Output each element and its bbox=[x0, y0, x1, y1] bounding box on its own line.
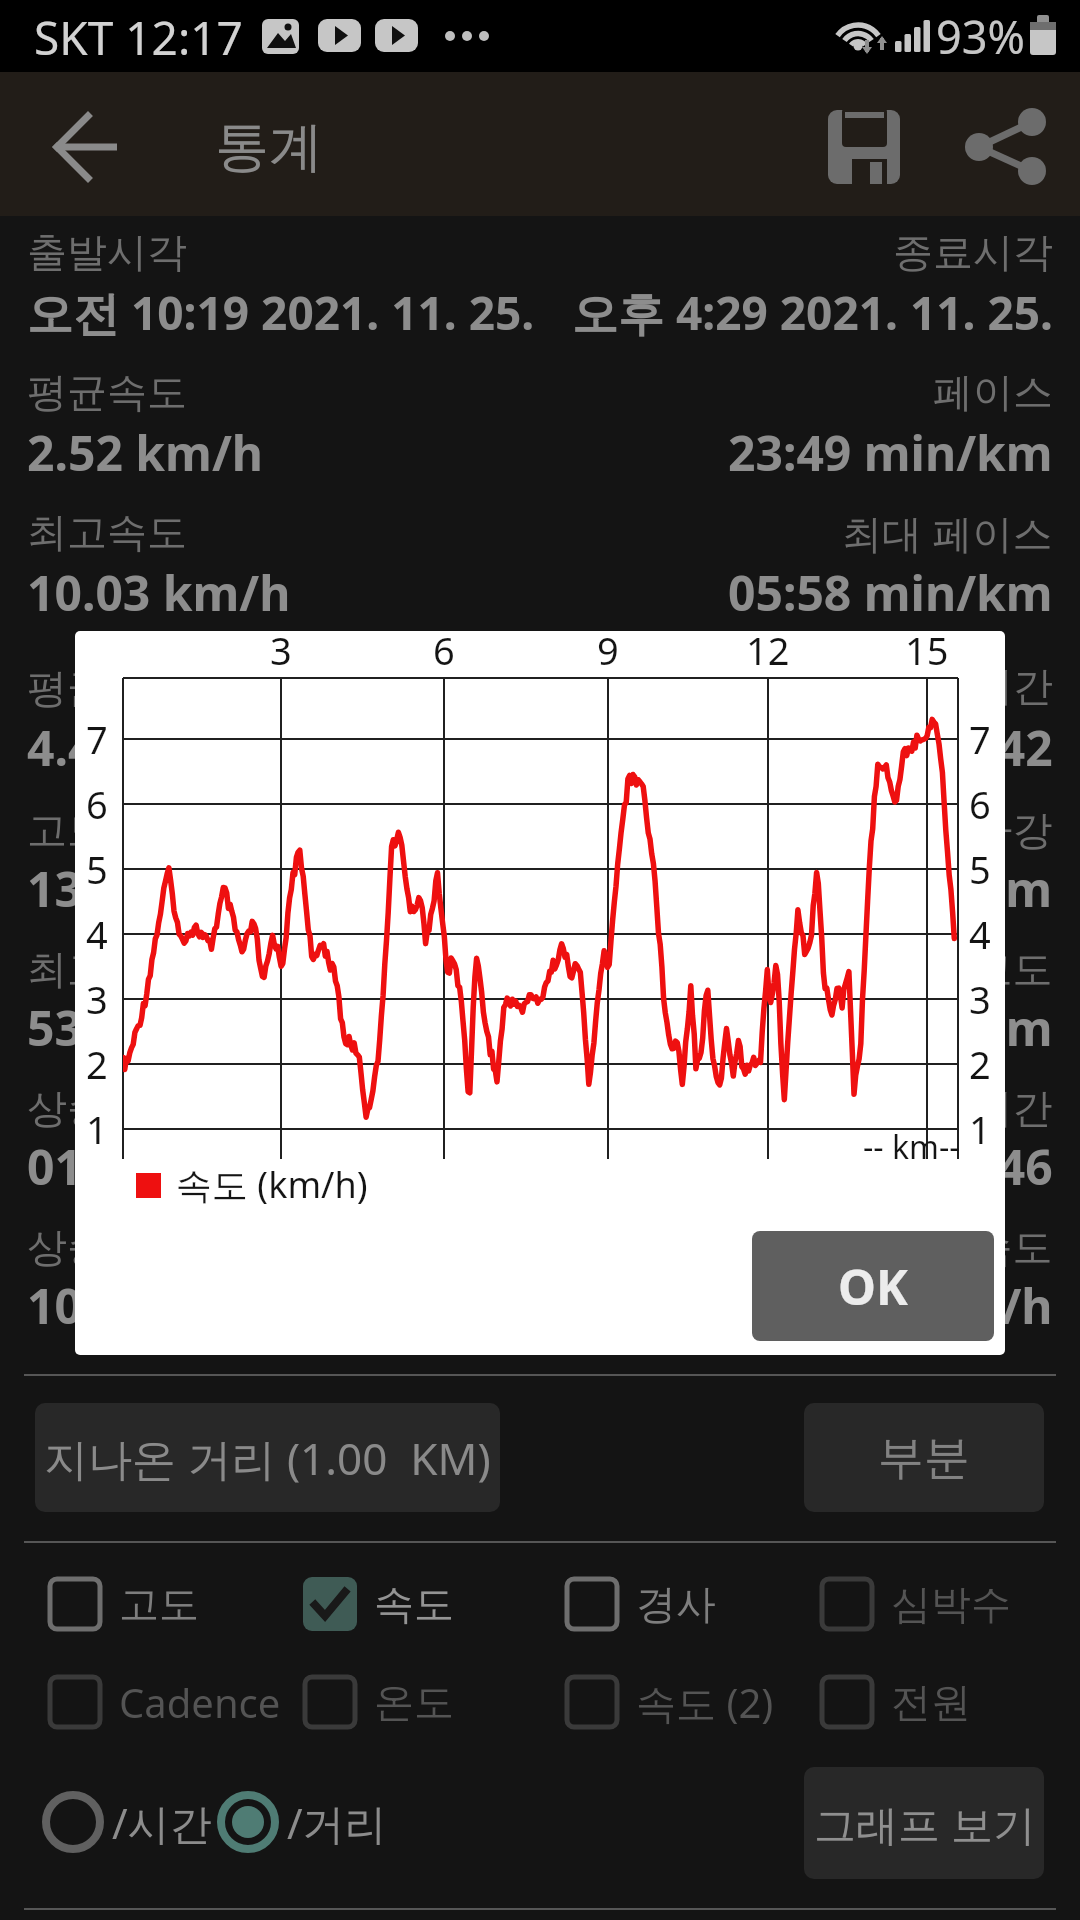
staticText: /시간 bbox=[112, 1794, 212, 1851]
staticText: 2 bbox=[969, 1038, 991, 1090]
staticText: SKT 12:17 bbox=[34, 6, 243, 69]
staticText: 7 bbox=[969, 713, 991, 765]
staticText: 온도 bbox=[374, 1677, 454, 1727]
staticText: 오전 10:19 2021. 11. 25. bbox=[27, 281, 535, 344]
staticText: 상승 속도 bbox=[27, 1218, 198, 1273]
staticText: 3 bbox=[270, 631, 292, 676]
staticText: 통계 bbox=[215, 113, 323, 181]
button[interactable] bbox=[35, 107, 135, 187]
staticText: 고도 하강 bbox=[882, 801, 1053, 856]
button[interactable]: 속도 (2) bbox=[565, 1675, 774, 1729]
staticText: 1.2 km/h bbox=[844, 1273, 1053, 1338]
button[interactable]: Cadence bbox=[48, 1675, 281, 1729]
staticText: 15 bbox=[905, 631, 949, 676]
staticText: 03:08:42 bbox=[861, 715, 1053, 780]
staticText: 4.44 km/h bbox=[27, 715, 264, 780]
staticText: 하강 속도 bbox=[882, 1218, 1053, 1273]
staticText: 93% bbox=[936, 6, 1025, 67]
staticText: OK bbox=[838, 1254, 908, 1319]
button[interactable] bbox=[955, 100, 1055, 195]
staticText: 최저 고도 bbox=[882, 940, 1053, 995]
staticText: 최대 페이스 bbox=[842, 505, 1053, 560]
staticText: 5 bbox=[969, 843, 991, 895]
staticText: 1349 m bbox=[27, 856, 197, 921]
staticText: 05:58 min/km bbox=[728, 560, 1053, 625]
staticText: 12 bbox=[746, 631, 790, 676]
staticText: /거리 bbox=[287, 1794, 387, 1851]
staticText: 평균속도 bbox=[27, 367, 187, 417]
staticText: 3 bbox=[969, 973, 991, 1025]
staticText: 9 bbox=[597, 631, 619, 676]
staticText: 1 bbox=[969, 1103, 991, 1155]
button[interactable]: 경사 bbox=[565, 1577, 716, 1631]
button[interactable]: OK bbox=[752, 1231, 994, 1341]
staticText: 고도 상승 bbox=[27, 801, 198, 856]
staticText: 종료시각 bbox=[893, 227, 1053, 277]
staticText: 6 bbox=[969, 778, 991, 830]
button[interactable]: 전원 bbox=[820, 1675, 971, 1729]
staticText: 최고속도 bbox=[27, 507, 187, 557]
staticText: 속도 (km/h) bbox=[176, 1160, 368, 1209]
staticText: 4 bbox=[86, 908, 108, 960]
staticText: 6 bbox=[433, 631, 455, 676]
button[interactable]: 속도 bbox=[303, 1577, 454, 1631]
staticText: 23:49 min/km bbox=[728, 420, 1053, 485]
staticText: 출발시각 bbox=[27, 227, 187, 277]
staticText: 2.52 km/h bbox=[27, 420, 264, 485]
staticText: 10.03 km/h bbox=[27, 560, 291, 625]
staticText: 상승 시간 bbox=[27, 1079, 198, 1134]
staticText: 고도 bbox=[119, 1579, 199, 1629]
staticText: 4 bbox=[969, 908, 991, 960]
button[interactable]: 온도 bbox=[303, 1675, 454, 1729]
staticText: 페이스 bbox=[933, 367, 1053, 417]
staticText: 평균 이동속도 bbox=[27, 659, 278, 714]
staticText: 6 bbox=[86, 778, 108, 830]
staticText: 하강 시간 bbox=[882, 1079, 1053, 1134]
button[interactable]: 심박수 bbox=[820, 1577, 1011, 1631]
button[interactable]: 지나온 거리 (1.00 KM) bbox=[35, 1403, 500, 1512]
button[interactable]: /시간 bbox=[42, 1791, 212, 1853]
staticText: 지나온 거리 (1.00 KM) bbox=[44, 1428, 491, 1488]
staticText: 01:30:01 bbox=[27, 1134, 219, 1199]
staticText: 경사 bbox=[636, 1579, 716, 1629]
button[interactable]: 부분 bbox=[804, 1403, 1044, 1512]
staticText: 1 bbox=[86, 1103, 108, 1155]
staticText: 이동시간 bbox=[893, 661, 1053, 711]
staticText: 3 bbox=[86, 973, 108, 1025]
staticText: 심박수 bbox=[891, 1579, 1011, 1629]
staticText: 2 bbox=[86, 1038, 108, 1090]
staticText: 1285 m bbox=[883, 856, 1053, 921]
staticText: 5 bbox=[86, 843, 108, 895]
button[interactable]: 그래프 보기 bbox=[804, 1767, 1044, 1879]
staticText: 그래프 보기 bbox=[814, 1795, 1035, 1852]
staticText: 141 m bbox=[911, 995, 1053, 1060]
staticText: 최고 고도 bbox=[27, 940, 198, 995]
staticText: 속도 bbox=[374, 1579, 454, 1629]
staticText: 7 bbox=[86, 713, 108, 765]
staticText: 부분 bbox=[878, 1429, 970, 1487]
staticText: 02:31:46 bbox=[861, 1134, 1053, 1199]
staticText: Cadence bbox=[119, 1675, 281, 1729]
staticText: 속도 (2) bbox=[636, 1675, 774, 1729]
staticText: 536 m bbox=[27, 995, 169, 1060]
staticText: 10.2 km/h bbox=[27, 1273, 264, 1338]
button[interactable]: /거리 bbox=[217, 1791, 387, 1853]
button[interactable]: 고도 bbox=[48, 1577, 199, 1631]
staticText: -- km-- bbox=[863, 1125, 960, 1169]
button[interactable] bbox=[818, 103, 910, 193]
staticText: 오후 4:29 2021. 11. 25. bbox=[572, 281, 1053, 344]
staticText: 전원 bbox=[891, 1677, 971, 1727]
